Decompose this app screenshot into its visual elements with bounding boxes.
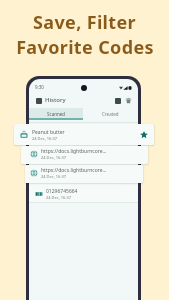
- button[interactable]: Peanut butter: [14, 124, 154, 145]
- staticText: History: [45, 96, 66, 104]
- staticText: Favorite Codes: [16, 35, 154, 60]
- staticText: Peanut butter: [32, 129, 65, 136]
- staticText: Scanned: [47, 111, 66, 117]
- staticText: 01296745664: [46, 188, 78, 195]
- button[interactable]: 01296745664: [29, 184, 138, 203]
- button[interactable]: https://docs.lightburncore…: [21, 146, 148, 164]
- button[interactable]: Open navigation menu: [33, 95, 44, 106]
- staticText: 9:30: [35, 84, 44, 90]
- button[interactable]: https://docs.lightburncore…: [25, 165, 143, 183]
- button[interactable]: Scanned: [29, 108, 83, 120]
- staticText: Save, Filter: [33, 10, 136, 35]
- staticText: https://docs.lightburncore…: [41, 167, 107, 174]
- staticText: https://docs.lightburncore…: [41, 148, 107, 155]
- staticText: 24 Dec, 16:37: [41, 155, 67, 160]
- staticText: 24 Dec, 16:37: [32, 136, 58, 141]
- staticText: 24 Dec, 16:37: [41, 174, 67, 179]
- button[interactable]: Select items: [112, 95, 123, 106]
- staticText: Created: [102, 111, 119, 117]
- button[interactable]: Created: [83, 108, 138, 120]
- button[interactable]: Delete history: [123, 95, 134, 106]
- staticText: 24 Dec, 16:37: [46, 195, 72, 200]
